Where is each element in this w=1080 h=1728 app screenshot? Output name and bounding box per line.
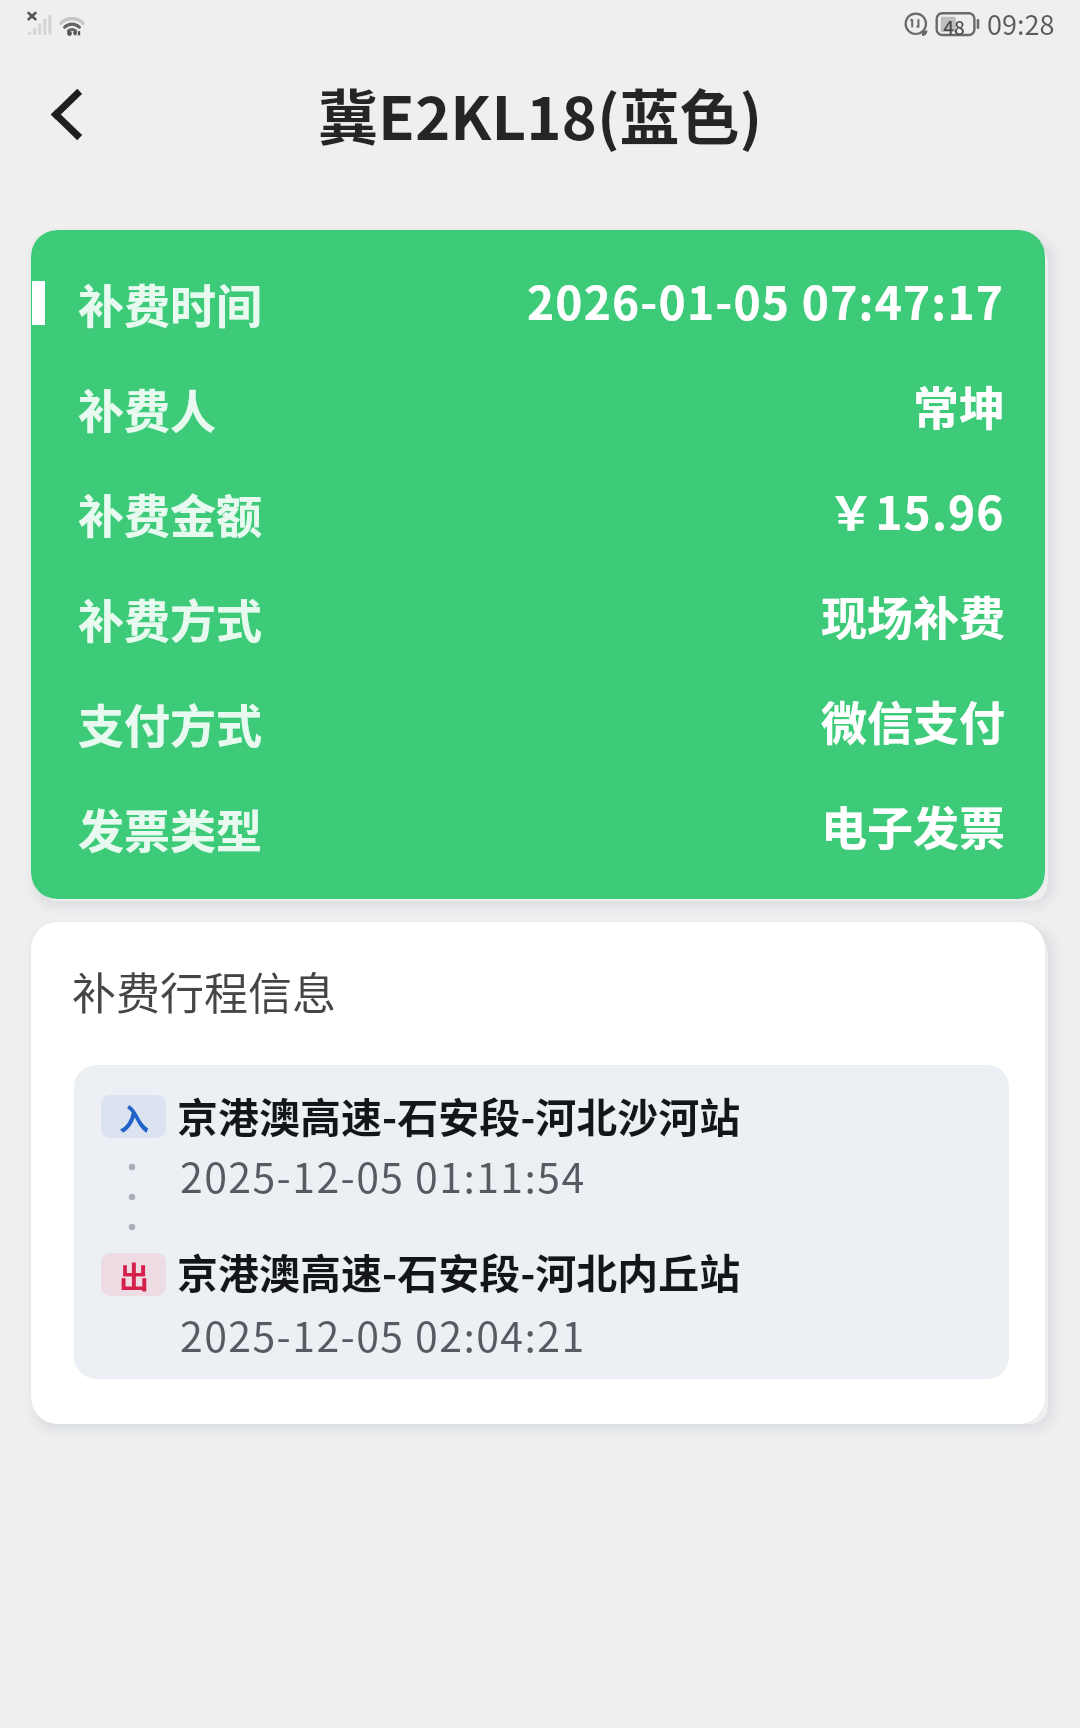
button[interactable]: 入 [74, 1065, 1009, 1379]
button[interactable]: 补费金额 [31, 461, 1045, 566]
button[interactable]: 补费方式 [31, 566, 1045, 671]
staticText: 2025-12-05 02:04:21 [180, 1304, 586, 1363]
staticText: 冀E2KL18(蓝色) [318, 70, 763, 157]
button[interactable]: 支付方式 [31, 671, 1045, 776]
button[interactable]: 补费时间 [31, 251, 1045, 356]
staticText: 补费人 [78, 375, 216, 442]
staticText: 2026-01-05 07:47:17 [527, 267, 1005, 334]
button[interactable]: 补费人 [31, 356, 1045, 461]
staticText: ￥15.96 [828, 477, 1005, 544]
staticText: 现场补费 [821, 582, 1005, 649]
staticText: 微信支付 [821, 687, 1005, 754]
staticText: 48 [940, 13, 968, 41]
staticText: 常坤 [913, 372, 1005, 439]
staticText: 补费方式 [78, 585, 262, 652]
staticText: 京港澳高速-石安段-河北沙河站 [177, 1085, 741, 1144]
staticText: 入 [119, 1095, 149, 1138]
staticText: 出 [119, 1253, 149, 1296]
staticText: 补费金额 [78, 480, 262, 547]
staticText: 电子发票 [821, 792, 1005, 859]
staticText: 2025-12-05 01:11:54 [180, 1145, 586, 1204]
staticText: 发票类型 [78, 795, 262, 862]
staticText: 补费时间 [78, 270, 262, 337]
staticText: 支付方式 [78, 690, 262, 757]
button[interactable]: Back [16, 64, 116, 164]
staticText: 09:28 [987, 4, 1055, 43]
staticText: 京港澳高速-石安段-河北内丘站 [177, 1241, 741, 1300]
button[interactable]: 发票类型 [31, 776, 1045, 881]
staticText: 补费行程信息 [72, 959, 336, 1023]
